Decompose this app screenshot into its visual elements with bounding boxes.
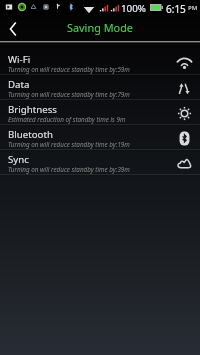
staticText: Data <box>8 78 30 91</box>
button[interactable]: Sync <box>0 151 200 176</box>
staticText: Estimated reduction of standby time is 9… <box>8 115 126 124</box>
button[interactable]: Bluetooth <box>0 126 200 151</box>
staticText: 100% <box>121 2 146 15</box>
staticText: Saving Mode <box>67 20 133 35</box>
staticText: Brightness <box>8 103 57 116</box>
staticText: Turning on will reduce standby time by:7… <box>8 90 130 99</box>
staticText: Turning on will reduce standby time by:1… <box>8 140 130 149</box>
staticText: Sync <box>8 153 29 166</box>
button[interactable]: Data <box>0 76 200 101</box>
button[interactable]: Brightness <box>0 101 200 126</box>
button[interactable]: Back <box>0 14 25 43</box>
staticText: Wi-Fi <box>8 53 31 66</box>
staticText: PM <box>188 4 198 12</box>
staticText: 6:15 <box>166 2 186 16</box>
button[interactable]: Wi-Fi <box>0 51 200 76</box>
staticText: Bluetooth <box>8 128 53 141</box>
staticText: Turning on will reduce standby time by:5… <box>8 65 130 74</box>
staticText: Turning on will reduce standby time by:3… <box>8 165 130 174</box>
